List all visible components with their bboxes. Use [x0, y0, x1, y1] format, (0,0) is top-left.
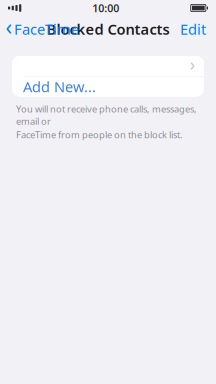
- button[interactable]: FaceTime: [0, 14, 79, 44]
- staticText: 10:00: [92, 1, 119, 15]
- staticText: FaceTime: [14, 19, 79, 39]
- staticText: Blocked Contacts: [46, 19, 169, 39]
- button[interactable]: Add New...: [12, 77, 204, 97]
- staticText: Edit: [180, 19, 206, 39]
- staticText: You will not receive phone calls, messag…: [16, 103, 197, 127]
- staticText: Add New...: [23, 77, 96, 96]
- staticText: FaceTime from people on the block list.: [16, 128, 183, 141]
- button[interactable]: Edit: [180, 14, 216, 44]
